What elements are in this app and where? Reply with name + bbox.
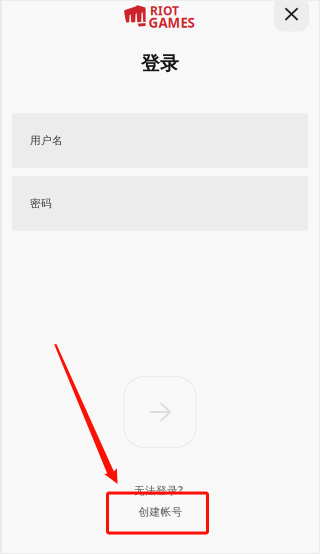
button[interactable]: 用户名 bbox=[12, 113, 308, 168]
button[interactable]: Sign in bbox=[124, 376, 196, 447]
staticText: 登录 bbox=[141, 52, 179, 75]
staticText: 用户名 bbox=[30, 134, 63, 147]
staticText: RIOT bbox=[150, 2, 179, 18]
staticText: 密码 bbox=[30, 197, 52, 210]
staticText: GAMES bbox=[148, 14, 194, 31]
staticText: 无法登录? bbox=[134, 483, 183, 497]
staticText: 创建帐号 bbox=[138, 505, 182, 518]
button[interactable]: 创建帐号 bbox=[138, 505, 182, 518]
button[interactable]: Close bbox=[274, 0, 309, 32]
button[interactable]: 密码 bbox=[12, 176, 308, 231]
button[interactable]: 无法登录? bbox=[134, 483, 183, 497]
